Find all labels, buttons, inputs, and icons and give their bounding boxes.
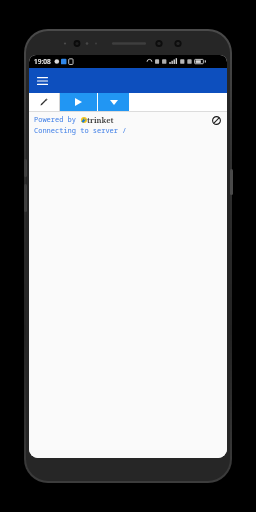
button[interactable]: Open navigation menu (34, 73, 50, 89)
staticText: Connecting to server / (34, 126, 127, 136)
button[interactable]: Run (60, 93, 97, 111)
button[interactable]: Edit code (29, 93, 59, 111)
staticText: 19:08 (34, 57, 51, 66)
staticText: trinket (87, 115, 114, 125)
button[interactable]: More run options (98, 93, 129, 111)
staticText: Powered by (34, 115, 81, 125)
button[interactable]: Stop (210, 114, 223, 127)
